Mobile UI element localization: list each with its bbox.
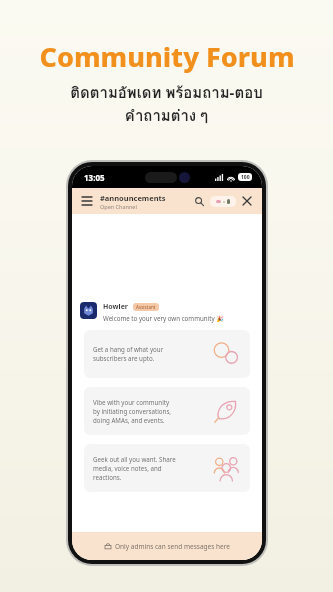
staticText: ติดตามอัพเดท พร้อมถาม-ตอบ คำถามต่าง ๆ bbox=[70, 81, 263, 128]
button[interactable]: Get a hang of what your subscribers are … bbox=[84, 330, 250, 378]
staticText: Get a hang of what your subscribers are … bbox=[93, 345, 205, 363]
button[interactable]: Menu bbox=[80, 194, 94, 208]
staticText: Vibe with your community by initiating c… bbox=[93, 398, 205, 425]
button[interactable]: Search bbox=[192, 194, 206, 208]
button[interactable]: Media controls bbox=[210, 196, 236, 207]
staticText: Only admins can send messages here bbox=[115, 542, 230, 551]
staticText: Open Channel bbox=[100, 203, 137, 210]
staticText: Howler bbox=[103, 302, 128, 312]
button[interactable]: Only admins can send messages here bbox=[72, 532, 262, 560]
button[interactable]: Vibe with your community by initiating c… bbox=[84, 387, 250, 435]
staticText: #announcements bbox=[100, 193, 166, 203]
staticText: Welcome to your very own community 🎉 bbox=[103, 314, 224, 322]
button[interactable]: Geek out all you want. Share media, voic… bbox=[84, 444, 250, 492]
button[interactable]: Close bbox=[240, 194, 254, 208]
staticText: 13:05 bbox=[84, 172, 105, 183]
staticText: Community Forum bbox=[39, 38, 295, 75]
staticText: Assistant bbox=[136, 304, 156, 310]
staticText: 100 bbox=[241, 174, 250, 181]
staticText: Geek out all you want. Share media, voic… bbox=[93, 455, 205, 482]
